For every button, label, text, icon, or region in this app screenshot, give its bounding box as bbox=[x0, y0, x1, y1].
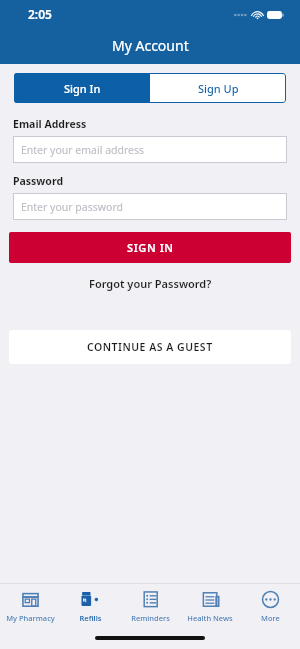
button[interactable]: More bbox=[240, 589, 300, 623]
button[interactable]: Enter your email address bbox=[13, 136, 287, 163]
button[interactable]: Refills bbox=[60, 589, 120, 623]
button[interactable]: SIGN IN bbox=[9, 232, 291, 263]
staticText: Reminders bbox=[131, 613, 170, 623]
button[interactable]: My Pharmacy bbox=[0, 589, 60, 623]
button[interactable]: Reminders bbox=[120, 589, 180, 623]
staticText: My Pharmacy bbox=[6, 613, 55, 623]
staticText: Enter your email address bbox=[21, 143, 145, 157]
staticText: More bbox=[261, 613, 280, 623]
staticText: Password bbox=[13, 174, 64, 188]
staticText: Enter your password bbox=[21, 200, 123, 214]
staticText: SIGN IN bbox=[127, 240, 174, 255]
button[interactable]: Enter your password bbox=[13, 193, 287, 220]
staticText: Email Address bbox=[13, 117, 87, 131]
staticText: Refills bbox=[79, 613, 102, 623]
button[interactable]: Sign In bbox=[14, 73, 150, 103]
staticText: 2:05 bbox=[28, 6, 52, 22]
button[interactable]: Health News bbox=[180, 589, 240, 623]
staticText: CONTINUE AS A GUEST bbox=[87, 340, 213, 354]
button[interactable]: Sign Up bbox=[150, 73, 286, 103]
button[interactable]: CONTINUE AS A GUEST bbox=[9, 330, 291, 364]
button[interactable]: Forgot your Password? bbox=[0, 276, 300, 291]
staticText: Health News bbox=[187, 613, 233, 623]
staticText: My Account bbox=[112, 36, 189, 55]
staticText: Sign Up bbox=[198, 81, 239, 96]
staticText: Forgot your Password? bbox=[89, 276, 212, 291]
staticText: Sign In bbox=[64, 81, 101, 96]
